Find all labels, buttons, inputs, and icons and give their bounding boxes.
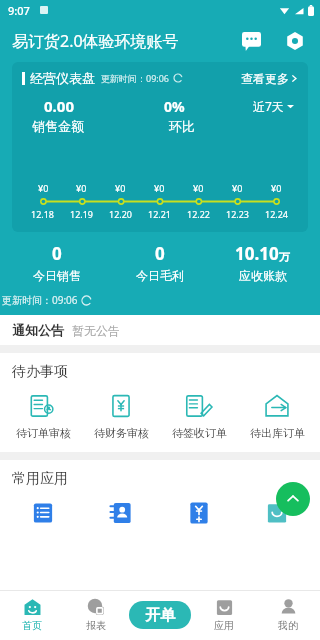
staticText: 常用应用 [12, 470, 68, 488]
staticText: 0 [52, 242, 62, 265]
staticText: 首页 [22, 619, 42, 632]
button[interactable]: 报表 [64, 590, 128, 640]
staticText: ¥0 [154, 182, 165, 194]
button[interactable]: 经营仪表盘 [12, 62, 308, 232]
button[interactable]: 0 [6, 242, 108, 283]
staticText: 开单 [145, 606, 175, 625]
staticText: 今日毛利 [136, 268, 184, 283]
staticText: ¥0 [193, 182, 204, 194]
staticText: 报表 [86, 619, 106, 632]
staticText: 10.10 [235, 242, 279, 265]
button[interactable]: 近7天 [253, 98, 294, 114]
staticText: ¥0 [76, 182, 87, 194]
button[interactable]: Messages [238, 28, 264, 54]
button[interactable]: More [238, 498, 316, 528]
staticText: 我的 [278, 619, 298, 632]
button[interactable]: 10.10 [211, 242, 314, 283]
staticText: 9:07 [8, 3, 30, 18]
staticText: 12.24 [265, 208, 289, 220]
staticText: ¥0 [115, 182, 126, 194]
button[interactable]: 待签收订单 [160, 393, 238, 440]
button[interactable]: 待订单审核 [4, 393, 82, 440]
button[interactable]: Payment [160, 498, 238, 528]
staticText: 12.23 [226, 208, 250, 220]
staticText: 12.19 [70, 208, 94, 220]
staticText: 暂无公告 [72, 323, 120, 338]
button[interactable]: 我的 [256, 590, 320, 640]
staticText: 待出库订单 [250, 426, 305, 440]
staticText: 0.00 [44, 96, 74, 116]
button[interactable]: Scroll to top [276, 482, 310, 516]
button[interactable]: 待财务审核 [82, 393, 160, 440]
staticText: 12.21 [148, 208, 172, 220]
staticText: 经营仪表盘 [30, 70, 95, 86]
staticText: 12.22 [187, 208, 211, 220]
button[interactable]: 应用 [192, 590, 256, 640]
staticText: ¥0 [232, 182, 243, 194]
staticText: 待办事项 [12, 363, 68, 381]
staticText: 待签收订单 [172, 426, 227, 440]
button[interactable]: Order list [4, 498, 82, 528]
staticText: 待订单审核 [16, 426, 71, 440]
button[interactable]: 首页 [0, 590, 64, 640]
button[interactable]: Settings [282, 28, 308, 54]
staticText: ¥0 [271, 182, 282, 194]
staticText: 销售金额 [32, 118, 84, 134]
staticText: 环比 [169, 118, 195, 134]
staticText: 0 [155, 242, 165, 265]
button[interactable]: Contacts [82, 498, 160, 528]
staticText: 万 [279, 250, 290, 264]
staticText: 易订货2.0体验环境账号 [12, 30, 179, 52]
button[interactable]: 开单 [129, 601, 191, 629]
staticText: 应用 [214, 619, 234, 632]
staticText: ¥0 [38, 182, 49, 194]
staticText: 12.18 [31, 208, 55, 220]
staticText: 近7天 [253, 98, 284, 114]
staticText: 查看更多 [241, 71, 289, 86]
button[interactable]: 查看更多 [241, 71, 298, 86]
staticText: 应收账款 [239, 268, 287, 283]
button[interactable]: 0 [108, 242, 211, 283]
staticText: 12.20 [109, 208, 133, 220]
button[interactable]: 待出库订单 [238, 393, 316, 440]
staticText: 更新时间：09:06 [101, 72, 170, 84]
staticText: 待财务审核 [94, 426, 149, 440]
staticText: 0% [164, 97, 185, 116]
button[interactable]: 通知公告 [0, 315, 320, 345]
staticText: 今日销售 [33, 268, 81, 283]
staticText: 通知公告 [12, 322, 64, 338]
staticText: 更新时间：09:06 [2, 293, 78, 307]
